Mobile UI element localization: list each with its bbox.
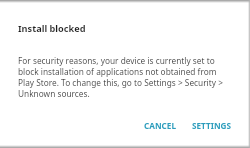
staticText: Install blocked <box>18 22 86 35</box>
staticText: SETTINGS <box>192 120 231 131</box>
staticText: For security reasons, your device is cur… <box>18 55 229 99</box>
button[interactable]: SETTINGS <box>185 115 238 136</box>
staticText: CANCEL <box>144 120 176 131</box>
button[interactable]: CANCEL <box>137 115 185 136</box>
